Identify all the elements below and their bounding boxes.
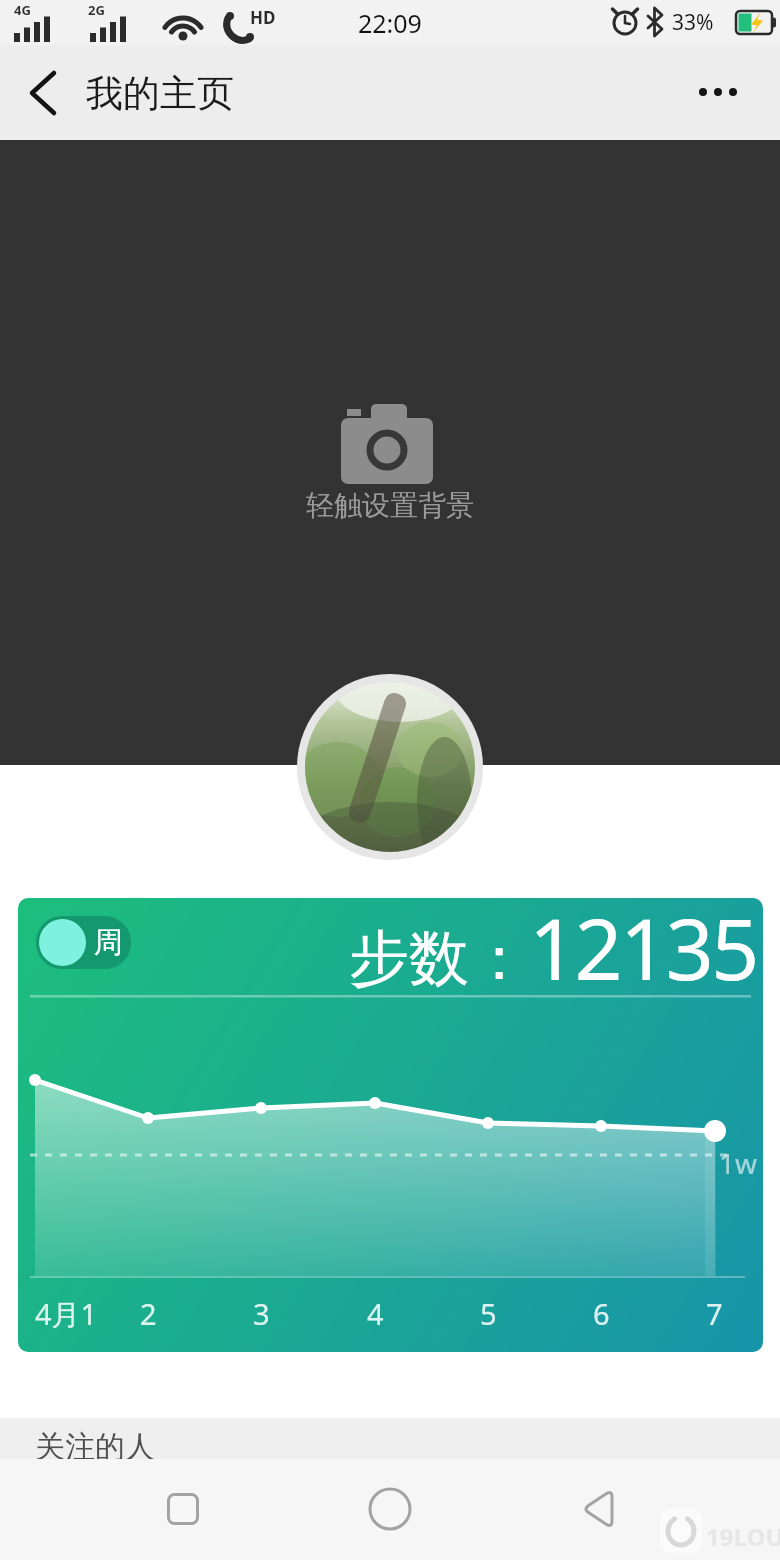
staticText: 4G: [14, 1, 31, 19]
button[interactable]: 轻触设置背景: [0, 140, 780, 765]
staticText: 4月1: [35, 1294, 98, 1328]
staticText: 12135: [529, 898, 757, 1004]
button[interactable]: 关注的人: [0, 1418, 780, 1459]
staticText: 1w: [719, 1144, 758, 1182]
staticText: 轻触设置背景: [306, 488, 474, 523]
staticText: 19LOU: [706, 1520, 780, 1553]
staticText: 7: [706, 1294, 723, 1328]
button[interactable]: [680, 62, 756, 122]
button[interactable]: [297, 674, 483, 860]
staticText: 步数：: [349, 921, 529, 997]
button[interactable]: [568, 1479, 628, 1539]
staticText: 周: [94, 924, 123, 961]
staticText: 2G: [88, 1, 105, 19]
staticText: 6: [593, 1294, 610, 1328]
staticText: 4: [367, 1294, 384, 1328]
staticText: 5: [480, 1294, 497, 1328]
button[interactable]: [153, 1479, 213, 1539]
staticText: 33%: [672, 8, 714, 37]
staticText: 22:09: [358, 6, 422, 40]
button[interactable]: 周: [36, 916, 131, 969]
staticText: HD: [250, 6, 276, 29]
button[interactable]: [16, 63, 68, 123]
staticText: 2: [140, 1294, 157, 1328]
staticText: 3: [253, 1294, 270, 1328]
staticText: 我的主页: [86, 70, 234, 117]
staticText: 关注的人: [35, 1428, 155, 1459]
button[interactable]: [360, 1479, 420, 1539]
